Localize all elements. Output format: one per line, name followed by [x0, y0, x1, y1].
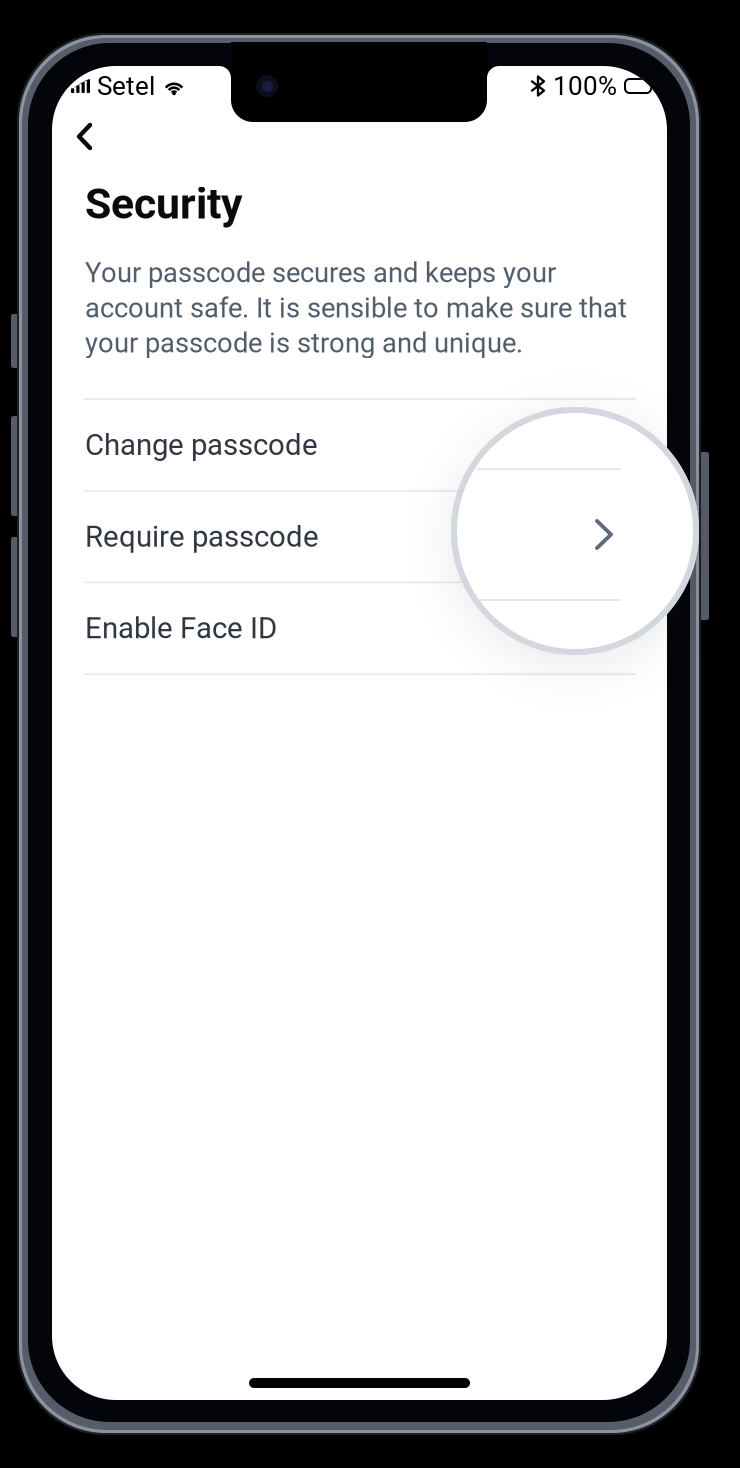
staticText: Your passcode secures and keeps your acc…: [85, 257, 627, 359]
staticText: Setel: [97, 71, 155, 101]
button[interactable]: Change passcode: [52, 400, 667, 490]
button[interactable]: Back: [52, 111, 120, 162]
staticText: Enable Face ID: [85, 611, 277, 646]
staticText: 100%: [553, 71, 617, 101]
staticText: Change passcode: [85, 428, 318, 462]
staticText: Security: [85, 179, 242, 229]
button[interactable]: Enable Face ID: [52, 583, 667, 673]
button[interactable]: Require passcode: [52, 492, 667, 581]
staticText: Require passcode: [85, 519, 319, 554]
